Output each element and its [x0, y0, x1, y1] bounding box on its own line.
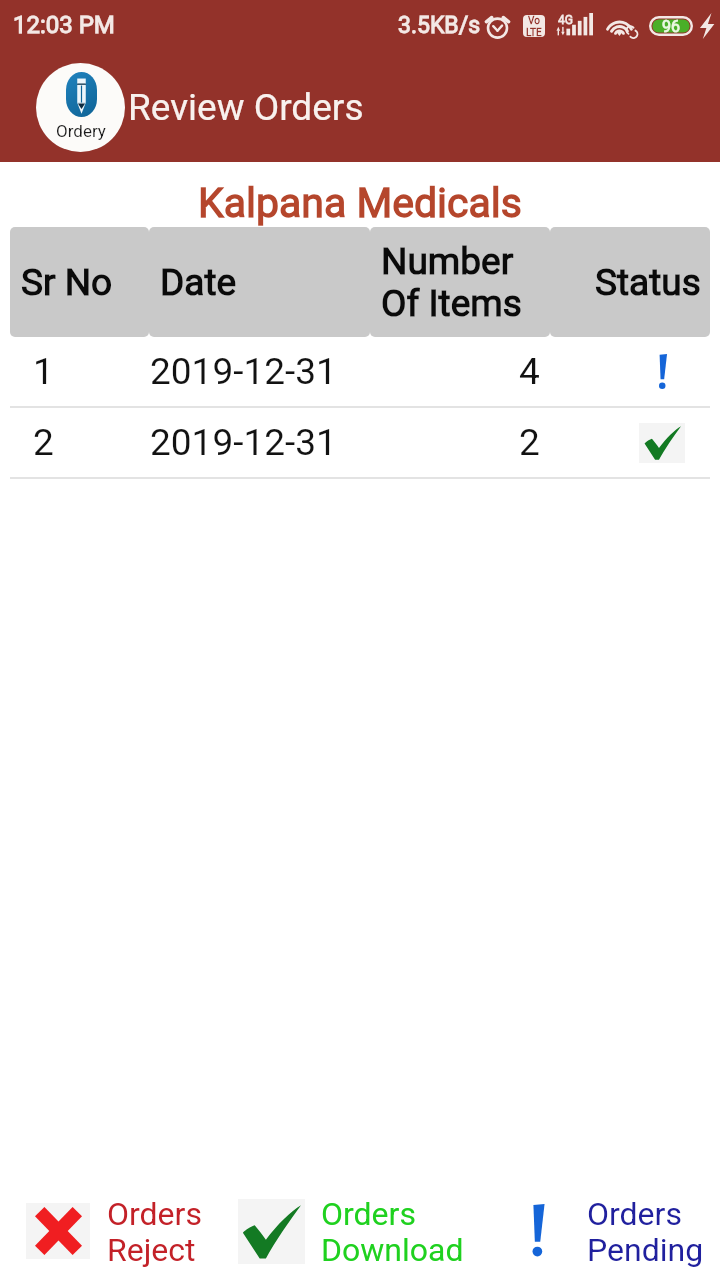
staticText: Number Of Items [381, 240, 522, 325]
staticText: Orders Reject [107, 1195, 202, 1268]
staticText: 96 [662, 17, 680, 36]
staticText: Orders Pending [587, 1195, 704, 1268]
button[interactable]: Orders Pending [525, 1186, 704, 1276]
button[interactable]: 2 [0, 408, 720, 479]
button[interactable]: Ordery app logo [36, 63, 125, 152]
staticText: Sr No [21, 261, 113, 304]
button[interactable]: Number Of Items [370, 227, 550, 337]
staticText: Orders Download [321, 1195, 464, 1268]
staticText: 3.5KB/s [398, 12, 481, 39]
staticText: 2 [519, 421, 540, 464]
staticText: 4 [519, 350, 540, 393]
staticText: Status [595, 261, 701, 304]
staticText: Review Orders [128, 86, 364, 129]
staticText: Kalpana Medicals [0, 179, 720, 227]
staticText: Vo [528, 15, 540, 27]
staticText: 1 [33, 350, 54, 393]
button[interactable]: Sr No [10, 227, 149, 337]
staticText: 12:03 PM [13, 11, 115, 39]
button[interactable]: 1 [0, 337, 720, 408]
button[interactable]: Order downloaded [639, 423, 685, 463]
staticText: 2 [33, 421, 54, 464]
button[interactable]: Order pending [656, 354, 668, 390]
staticText: Date [160, 261, 237, 304]
staticText: LTE [526, 27, 542, 37]
staticText: 4G [558, 13, 573, 27]
staticText: 2019-12-31 [150, 350, 337, 393]
button[interactable]: Status [550, 227, 710, 337]
button[interactable]: Orders Reject [26, 1186, 202, 1276]
staticText: 2019-12-31 [150, 421, 337, 464]
staticText: Ordery [56, 121, 106, 141]
button[interactable]: Orders Download [238, 1186, 464, 1276]
button[interactable]: Date [149, 227, 370, 337]
